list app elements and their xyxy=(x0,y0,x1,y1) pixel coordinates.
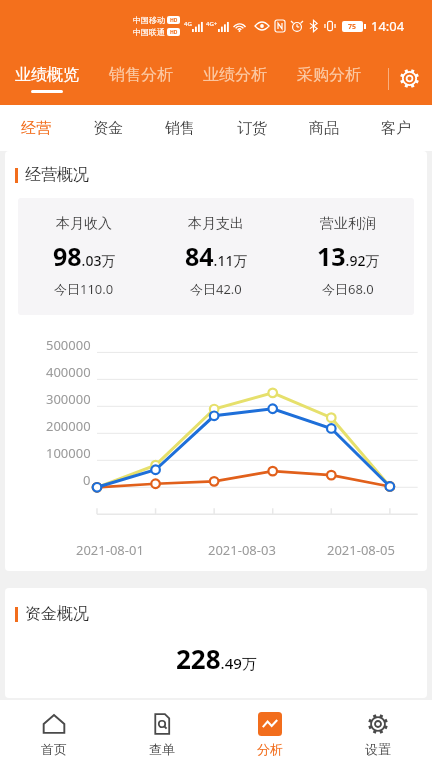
staticText: 84.11万 xyxy=(185,239,248,273)
button[interactable]: 商品 xyxy=(288,105,360,151)
staticText: 中国移动 xyxy=(133,15,165,25)
staticText: 本月支出 xyxy=(188,215,244,233)
staticText: 营业利润 xyxy=(320,215,376,233)
staticText: 客户 xyxy=(381,119,411,138)
button[interactable]: 查单 xyxy=(108,700,216,768)
staticText: 中国联通 xyxy=(133,27,165,37)
staticText: 2021-08-01 xyxy=(76,541,144,559)
staticText: 0 xyxy=(83,471,91,489)
staticText: 经营 xyxy=(21,119,51,138)
staticText: HD xyxy=(170,29,178,36)
staticText: 设置 xyxy=(365,741,391,757)
staticText: 300000 xyxy=(46,390,91,408)
button[interactable]: Settings xyxy=(376,52,432,105)
button[interactable]: 首页 xyxy=(0,700,108,768)
staticText: 销售分析 xyxy=(109,65,173,85)
staticText: 14:04 xyxy=(371,17,405,35)
button[interactable]: 销售分析 xyxy=(94,52,188,105)
button[interactable]: 经营 xyxy=(0,105,72,151)
staticText: 13.92万 xyxy=(317,239,380,273)
button[interactable]: 订货 xyxy=(216,105,288,151)
staticText: 2021-08-05 xyxy=(327,541,395,559)
staticText: 分析 xyxy=(257,741,283,757)
staticText: 100000 xyxy=(46,444,91,462)
button[interactable]: 业绩概览 xyxy=(0,52,94,105)
staticText: 200000 xyxy=(46,417,91,435)
staticText: 今日42.0 xyxy=(190,280,242,298)
button[interactable]: 设置 xyxy=(324,700,432,768)
staticText: 资金概况 xyxy=(25,604,89,624)
button[interactable]: 分析 xyxy=(216,700,324,768)
staticText: 98.03万 xyxy=(53,239,116,273)
button[interactable]: 业绩分析 xyxy=(188,52,282,105)
staticText: 4G+ xyxy=(206,20,218,28)
staticText: 采购分析 xyxy=(297,65,361,85)
staticText: 500000 xyxy=(46,336,91,354)
staticText: 资金 xyxy=(93,119,123,138)
staticText: 本月收入 xyxy=(56,215,112,233)
staticText: 业绩分析 xyxy=(203,65,267,85)
staticText: 228.49万 xyxy=(176,641,257,676)
staticText: 经营概况 xyxy=(25,165,89,185)
button[interactable]: 资金 xyxy=(72,105,144,151)
staticText: HD xyxy=(170,17,178,24)
staticText: 75 xyxy=(348,22,357,32)
button[interactable]: 客户 xyxy=(360,105,432,151)
staticText: 400000 xyxy=(46,363,91,381)
staticText: 订货 xyxy=(237,119,267,138)
button[interactable]: 销售 xyxy=(144,105,216,151)
staticText: 2021-08-03 xyxy=(208,541,276,559)
staticText: 商品 xyxy=(309,119,339,138)
staticText: 查单 xyxy=(149,741,175,757)
staticText: 今日68.0 xyxy=(322,280,374,298)
staticText: 业绩概览 xyxy=(15,65,79,85)
staticText: 首页 xyxy=(41,741,67,757)
button[interactable]: 采购分析 xyxy=(282,52,376,105)
staticText: 今日110.0 xyxy=(54,280,114,298)
staticText: 销售 xyxy=(165,119,195,138)
staticText: 4G xyxy=(184,20,192,28)
